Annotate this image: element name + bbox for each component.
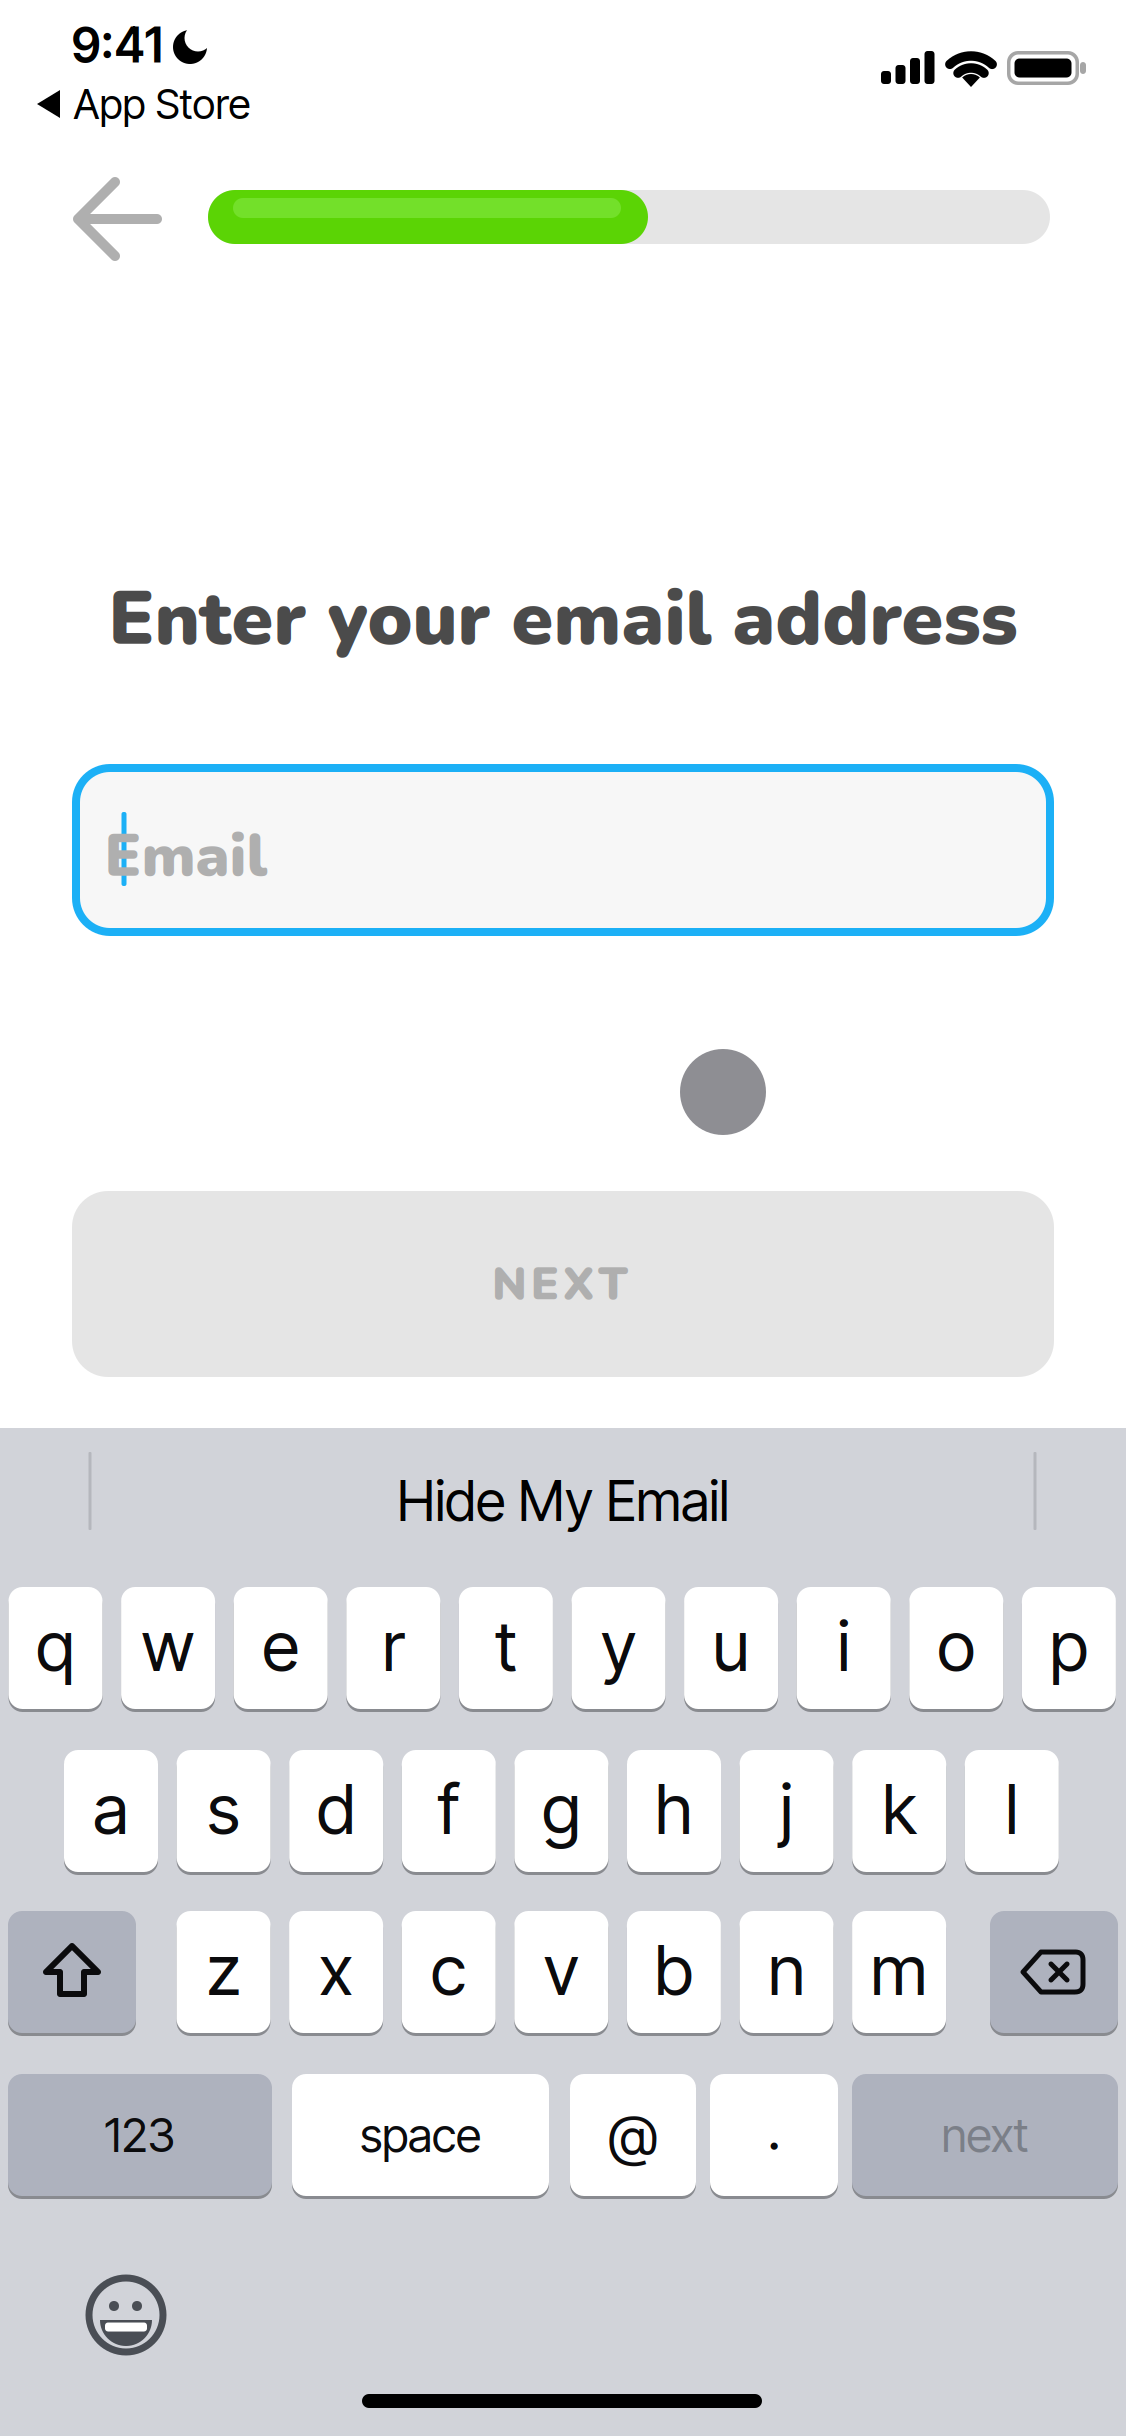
staticText: h xyxy=(655,1767,693,1851)
staticText: x xyxy=(319,1928,353,2012)
button[interactable]: t xyxy=(459,1587,553,1709)
staticText: q xyxy=(36,1604,75,1688)
staticText: p xyxy=(1049,1604,1088,1688)
staticText: r xyxy=(382,1604,404,1688)
button[interactable]: i xyxy=(797,1587,891,1709)
button[interactable]: v xyxy=(514,1911,608,2033)
staticText: n xyxy=(768,1928,805,2012)
button[interactable]: h xyxy=(627,1750,721,1872)
staticText: 123 xyxy=(104,2107,175,2163)
button[interactable]: @ xyxy=(570,2074,696,2196)
button[interactable]: m xyxy=(852,1911,946,2033)
button[interactable]: Back xyxy=(65,169,165,269)
staticText: v xyxy=(544,1928,579,2012)
staticText: z xyxy=(206,1928,240,2012)
button[interactable]: j xyxy=(740,1750,834,1872)
staticText: space xyxy=(360,2107,481,2163)
staticText: s xyxy=(207,1767,240,1851)
button[interactable]: e xyxy=(234,1587,328,1709)
staticText: . xyxy=(767,2095,780,2163)
button[interactable]: next xyxy=(852,2074,1118,2196)
staticText: c xyxy=(431,1928,467,2012)
staticText: j xyxy=(780,1767,793,1851)
button[interactable]: Shift xyxy=(8,1911,136,2033)
button[interactable]: space xyxy=(292,2074,549,2196)
button[interactable]: Delete xyxy=(990,1911,1118,2033)
button[interactable]: z xyxy=(176,1911,270,2033)
button[interactable]: y xyxy=(571,1587,665,1709)
button[interactable]: f xyxy=(402,1750,496,1872)
staticText: Email xyxy=(104,815,267,897)
button[interactable]: u xyxy=(684,1587,778,1709)
staticText: f xyxy=(438,1767,460,1851)
button[interactable]: x xyxy=(289,1911,383,2033)
button[interactable]: g xyxy=(514,1750,608,1872)
staticText: Hide My Email xyxy=(397,1468,729,1534)
button[interactable]: Emoji keyboard xyxy=(76,2265,176,2365)
button[interactable]: r xyxy=(346,1587,440,1709)
staticText: t xyxy=(495,1604,517,1688)
staticText: m xyxy=(871,1928,928,2012)
staticText: a xyxy=(93,1767,129,1851)
staticText: i xyxy=(837,1604,850,1688)
staticText: Enter your email address xyxy=(108,568,1017,670)
staticText: App Store xyxy=(73,79,250,129)
button[interactable]: w xyxy=(121,1587,215,1709)
button[interactable]: n xyxy=(739,1911,833,2033)
button[interactable]: 123 xyxy=(8,2074,272,2196)
button[interactable]: Back to App Store xyxy=(37,82,267,126)
button[interactable]: d xyxy=(289,1750,383,1872)
staticText: d xyxy=(317,1767,356,1851)
button[interactable]: NEXT xyxy=(72,1191,1054,1377)
button[interactable]: Hide My Email xyxy=(113,1453,1013,1549)
button[interactable]: a xyxy=(64,1750,158,1872)
staticText: u xyxy=(713,1604,750,1688)
button[interactable]: b xyxy=(627,1911,721,2033)
staticText: w xyxy=(142,1604,195,1688)
staticText: b xyxy=(654,1928,693,2012)
staticText: e xyxy=(262,1604,299,1688)
button[interactable]: c xyxy=(402,1911,496,2033)
button[interactable]: p xyxy=(1022,1587,1116,1709)
staticText: l xyxy=(1005,1767,1018,1851)
staticText: NEXT xyxy=(492,1253,628,1315)
button[interactable]: k xyxy=(852,1750,946,1872)
button[interactable]: q xyxy=(8,1587,102,1709)
staticText: @ xyxy=(608,2101,658,2169)
button[interactable]: . xyxy=(710,2074,838,2196)
staticText: y xyxy=(601,1604,636,1688)
staticText: k xyxy=(882,1767,916,1851)
staticText: 9:41 xyxy=(71,16,162,74)
button[interactable]: s xyxy=(177,1750,271,1872)
staticText: o xyxy=(937,1604,975,1688)
staticText: g xyxy=(542,1767,581,1851)
button[interactable]: o xyxy=(909,1587,1003,1709)
staticText: next xyxy=(941,2107,1028,2163)
button[interactable]: l xyxy=(965,1750,1059,1872)
